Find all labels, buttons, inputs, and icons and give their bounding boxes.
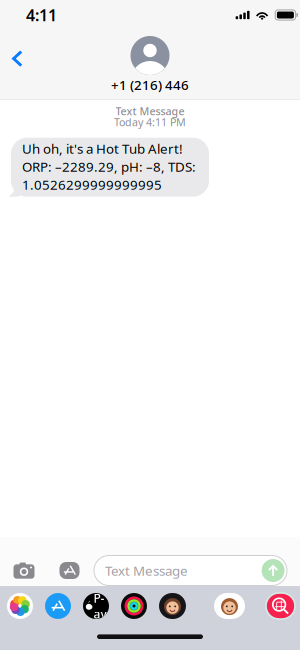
button[interactable]: Photos [7, 593, 33, 619]
button[interactable]: Back [0, 40, 35, 77]
button[interactable]: Text Message field [92, 555, 300, 585]
staticText: ORP: –2289.29, pH: –8, TDS: [22, 158, 196, 175]
button[interactable]: App Store [45, 593, 71, 619]
button[interactable]: Images [266, 593, 295, 619]
staticText: 1.0526299999999995 [22, 176, 162, 193]
staticText: 4:11 [26, 4, 57, 26]
button[interactable]: Camera [1, 555, 47, 586]
staticText: Today 4:11 PM [114, 115, 186, 129]
button[interactable]: Fitness [121, 593, 147, 619]
button[interactable]: Apple Pay [83, 593, 109, 619]
staticText: +1 (216) 446 [111, 76, 189, 94]
staticText: Uh oh, it's a Hot Tub Alert! [22, 140, 183, 157]
button[interactable]: App Store [47, 555, 92, 586]
staticText: Text Message [105, 562, 188, 579]
button[interactable]: Memoji stickers [214, 593, 245, 619]
button[interactable]: Memoji [159, 593, 186, 619]
staticText: Pay [93, 590, 106, 622]
staticText: Text Message [115, 104, 184, 118]
